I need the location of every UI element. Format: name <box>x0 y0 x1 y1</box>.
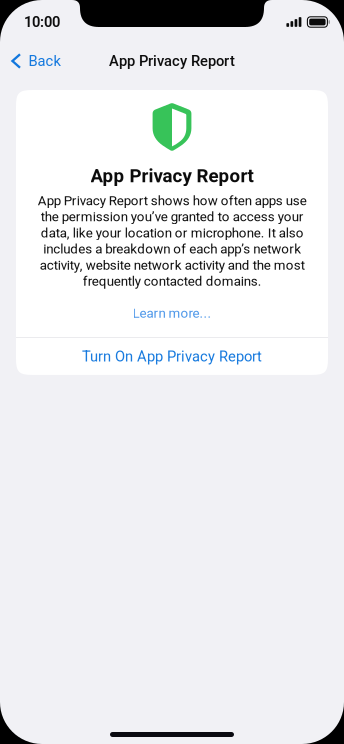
staticText: Turn On App Privacy Report <box>82 348 262 365</box>
staticText: 10:00 <box>24 13 60 31</box>
button[interactable]: Back <box>0 44 72 78</box>
button[interactable]: Learn more... <box>16 289 328 337</box>
button[interactable]: Turn On App Privacy Report <box>16 338 328 375</box>
staticText: App Privacy Report shows how often apps … <box>37 193 306 289</box>
staticText: App Privacy Report <box>109 52 235 70</box>
staticText: Back <box>28 52 60 70</box>
staticText: App Privacy Report <box>90 165 253 187</box>
staticText: Learn more... <box>132 305 211 321</box>
